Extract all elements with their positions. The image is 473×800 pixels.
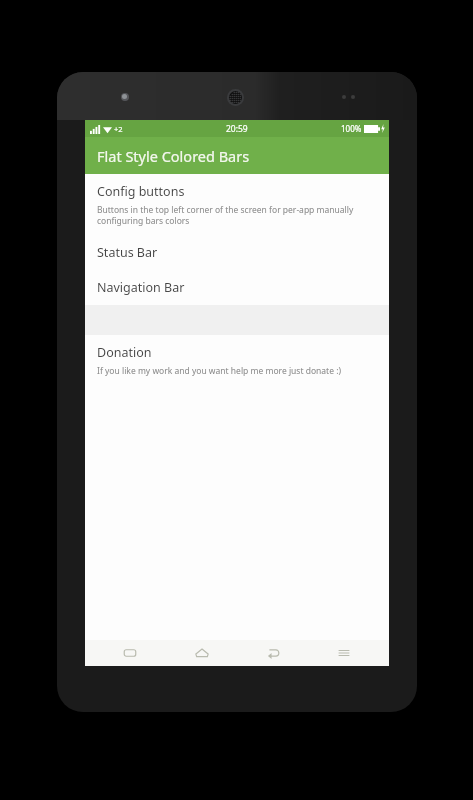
button[interactable]: Back bbox=[256, 640, 290, 666]
button[interactable]: Navigation Bar bbox=[85, 270, 389, 305]
staticText: Status Bar bbox=[97, 244, 158, 261]
staticText: +2 bbox=[114, 124, 123, 134]
staticText: If you like my work and you want help me… bbox=[97, 365, 341, 377]
staticText: Buttons in the top left corner of the sc… bbox=[97, 204, 379, 226]
staticText: Config buttons bbox=[97, 183, 185, 200]
staticText: 20:59 bbox=[226, 123, 248, 135]
button[interactable]: Menu bbox=[327, 640, 361, 666]
staticText: 100% bbox=[341, 123, 362, 134]
button[interactable]: Home bbox=[185, 640, 219, 666]
staticText: Navigation Bar bbox=[97, 279, 185, 296]
button[interactable]: Status Bar bbox=[85, 235, 389, 270]
button[interactable]: Donation bbox=[85, 335, 389, 386]
button[interactable]: Recents bbox=[113, 640, 147, 666]
button[interactable]: Config buttons bbox=[85, 174, 389, 235]
staticText: Flat Style Colored Bars bbox=[97, 146, 250, 166]
button[interactable]: Flat Style Colored Bars bbox=[85, 137, 389, 174]
staticText: Donation bbox=[97, 344, 152, 361]
